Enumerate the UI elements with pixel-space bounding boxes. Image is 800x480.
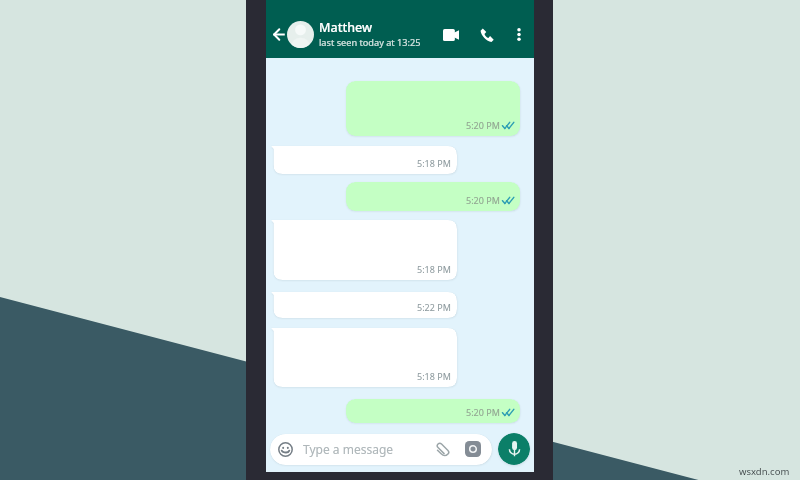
staticText: Type a message xyxy=(303,441,394,457)
button[interactable]: 5:18 PM xyxy=(271,146,457,174)
button[interactable]: Emoji xyxy=(275,439,295,459)
staticText: 5:18 PM xyxy=(417,370,451,382)
button[interactable]: Camera xyxy=(463,439,483,459)
button[interactable]: 5:18 PM xyxy=(271,220,457,280)
button[interactable]: Video call xyxy=(437,21,464,48)
button[interactable] xyxy=(270,434,492,465)
staticText: 5:20 PM xyxy=(466,406,500,418)
button[interactable]: 5:20 PM xyxy=(346,182,520,211)
staticText: last seen today at 13:25 xyxy=(319,36,421,49)
staticText: 5:20 PM xyxy=(466,194,500,206)
staticText: Matthew xyxy=(319,19,373,36)
button[interactable]: Back xyxy=(266,21,292,47)
button[interactable]: 5:22 PM xyxy=(271,292,457,318)
button[interactable]: Voice message xyxy=(498,433,530,465)
staticText: 5:18 PM xyxy=(417,157,451,169)
button[interactable]: Attach xyxy=(433,439,453,459)
button[interactable]: 5:20 PM xyxy=(346,399,520,423)
button[interactable]: 5:20 PM xyxy=(346,81,520,136)
staticText: wsxdn.com xyxy=(739,465,790,478)
button[interactable]: More options xyxy=(507,23,530,46)
button[interactable]: Call xyxy=(473,21,500,48)
staticText: 5:22 PM xyxy=(417,301,451,313)
button[interactable]: 5:18 PM xyxy=(271,328,457,387)
staticText: 5:20 PM xyxy=(466,119,500,131)
staticText: 5:18 PM xyxy=(417,263,451,275)
